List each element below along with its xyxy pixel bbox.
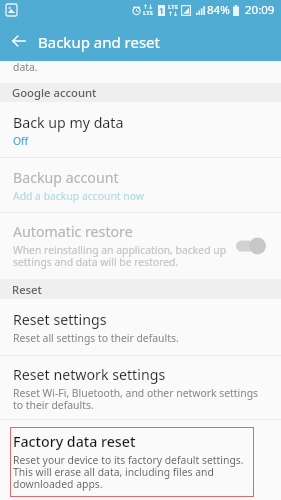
button[interactable]: Back up my data — [0, 102, 281, 157]
button[interactable]: Back — [0, 22, 38, 60]
staticText: data. — [13, 60, 38, 74]
staticText: Reset network settings — [13, 365, 166, 384]
staticText: 1 — [159, 5, 164, 16]
button[interactable]: Automatic restore — [0, 213, 281, 279]
button[interactable]: Reset network settings — [0, 356, 281, 419]
staticText: Reset all settings to their defaults. — [13, 331, 179, 345]
staticText: 20:09 — [245, 2, 275, 18]
staticText: Google account — [12, 85, 97, 100]
staticText: Add a backup account now — [13, 189, 144, 203]
staticText: When reinstalling an application, backed… — [13, 243, 227, 269]
staticText: Reset your device to its factory default… — [13, 453, 244, 491]
staticText: Reset Wi-Fi, Bluetooth, and other networ… — [13, 386, 259, 412]
staticText: Backup and reset — [38, 32, 160, 52]
button[interactable]: Factory data reset — [10, 427, 254, 497]
staticText: Automatic restore — [13, 222, 133, 241]
staticText: Reset settings — [13, 310, 107, 329]
staticText: LTE — [143, 9, 154, 17]
staticText: LTE — [168, 3, 179, 11]
staticText: Back up my data — [13, 113, 124, 132]
staticText: Reset — [12, 282, 42, 297]
button[interactable]: Backup account — [0, 158, 281, 212]
staticText: 84% — [207, 2, 230, 18]
staticText: Backup account — [13, 168, 119, 187]
staticText: Factory data reset — [13, 432, 136, 451]
button[interactable]: Reset settings — [0, 299, 281, 355]
staticText: Off — [13, 134, 29, 148]
staticText: ↑↓ — [168, 10, 179, 17]
staticText: ↑↓ — [143, 3, 154, 10]
